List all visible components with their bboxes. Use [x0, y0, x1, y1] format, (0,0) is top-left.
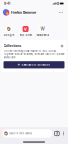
button[interactable]: Close: [59, 44, 64, 48]
staticText: Wikipedia: [36, 34, 48, 37]
button[interactable]: Save tabs to collection: [3, 61, 64, 68]
staticText: v: [24, 26, 27, 32]
button[interactable]: W: [34, 26, 51, 40]
staticText: Google: [4, 34, 14, 37]
staticText: Collections: [3, 44, 21, 48]
button[interactable]: Google: [0, 26, 17, 40]
staticText: Collect the things that matter to you. G…: [3, 50, 64, 59]
staticText: Firefox Browser: [11, 10, 36, 15]
button[interactable]: More: [57, 8, 65, 16]
button[interactable]: Menu: [61, 129, 65, 138]
staticText: W: [40, 26, 44, 32]
staticText: Top Sites: [20, 34, 32, 37]
staticText: 9:41: [4, 2, 10, 5]
button[interactable]: Tabs: [54, 129, 60, 138]
button[interactable]: Search or enter address: [2, 129, 52, 138]
staticText: Search or enter address: [9, 132, 32, 135]
staticText: Save tabs to collection: [21, 63, 50, 66]
button[interactable]: v: [17, 26, 34, 40]
staticText: 3: [56, 132, 58, 135]
